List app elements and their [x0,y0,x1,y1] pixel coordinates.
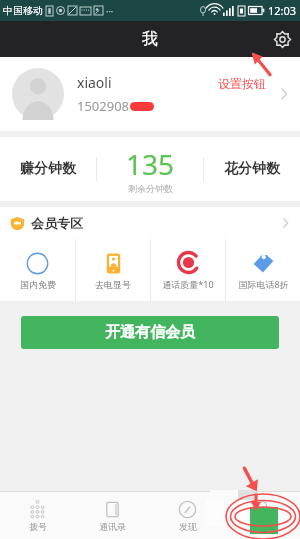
staticText: 通话质量*10 [162,278,214,290]
staticText: 剩余分钟数 [128,183,173,194]
staticText: 开通有信会员 [105,323,195,342]
button[interactable]: 开通有信会员 [21,316,279,349]
staticText: 花分钟数 [224,160,280,178]
staticText: 拨号 [29,521,47,532]
button[interactable]: 去电显号 [76,239,150,301]
staticText: 我 [258,521,267,532]
staticText: 会员专区 [31,215,83,231]
button[interactable]: 国际电话8折 [226,239,300,301]
staticText: ··· [106,5,114,17]
button[interactable]: xiaoli [0,57,300,131]
staticText: 发现 [179,521,197,532]
staticText: 135 [126,145,175,183]
button[interactable]: 花分钟数 [204,137,300,201]
button[interactable]: 国内免费 [0,239,75,301]
button[interactable]: 我 [225,492,300,539]
button[interactable]: 135 [97,137,203,201]
staticText: 国际电话8折 [238,278,289,290]
staticText: 去电显号 [95,279,131,290]
button[interactable]: Settings [264,21,300,57]
button[interactable]: 会员专区 [0,207,300,239]
staticText: 1502908 [77,97,130,115]
button[interactable]: 通讯录 [75,492,150,539]
button[interactable]: 通话质量*10 [151,239,225,301]
button[interactable]: 赚分钟数 [0,137,96,201]
staticText: 通讯录 [99,521,126,532]
staticText: 12:03 [268,3,297,18]
button[interactable]: 发现 [150,492,225,539]
staticText: 中国移动 [3,4,43,17]
staticText: 我 [142,29,158,49]
staticText: 设置按钮 [218,76,266,91]
staticText: 国内免费 [20,279,56,290]
staticText: 赚分钟数 [20,160,76,178]
button[interactable]: 拨号 [0,492,75,539]
staticText: xiaoli [77,73,112,92]
